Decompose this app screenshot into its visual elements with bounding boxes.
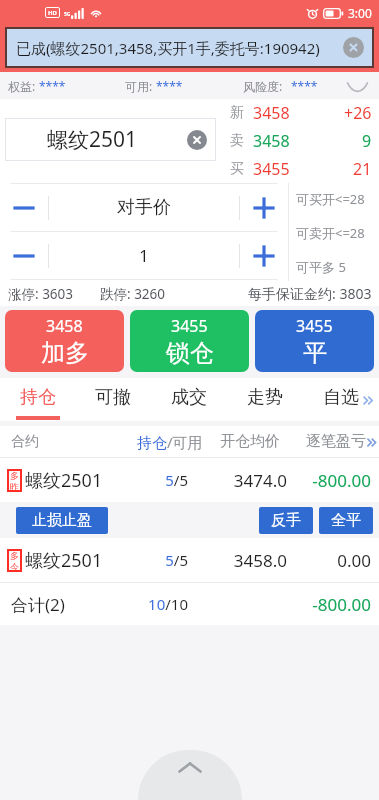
staticText: 开仓均价 — [220, 432, 280, 451]
button[interactable]: More tabs — [359, 391, 377, 409]
button[interactable]: 可撤 — [75, 378, 151, 421]
staticText: 新 — [230, 104, 244, 122]
staticText: 反手 — [271, 511, 301, 530]
staticText: +26 — [344, 102, 372, 124]
staticText: **** — [156, 78, 183, 94]
staticText: 3455 — [171, 315, 208, 337]
staticText: 全平 — [331, 511, 361, 530]
button[interactable]: 成交 — [151, 378, 227, 421]
staticText: 3458 — [253, 130, 290, 152]
button[interactable]: 3458 — [5, 310, 124, 372]
button[interactable]: 已成(螺纹2501,3458,买开1手,委托号:190942) — [5, 27, 374, 68]
button[interactable]: 反手 — [259, 507, 313, 534]
staticText: 3458 — [46, 315, 83, 337]
staticText: 螺纹2501 — [25, 548, 103, 573]
staticText: 5/5 — [0, 470, 188, 490]
staticText: 螺纹2501 — [25, 468, 103, 493]
staticText: 3455 — [296, 315, 333, 337]
button[interactable]: Increase — [240, 232, 288, 279]
staticText: 今 — [10, 561, 19, 572]
staticText: 3458.0 — [0, 549, 287, 572]
staticText: 可撤 — [95, 386, 131, 409]
staticText: 3:00 — [348, 5, 372, 21]
staticText: 可卖开<=28 — [296, 224, 365, 242]
button[interactable]: 3455 — [255, 310, 374, 372]
staticText: 3458 — [253, 102, 290, 124]
staticText: 每手保证金约: 3803 — [248, 284, 372, 303]
staticText: 买 — [230, 160, 244, 178]
staticText: 止损止盈 — [32, 511, 92, 530]
button[interactable]: 止损止盈 — [16, 507, 108, 534]
button[interactable]: 卖 — [228, 127, 379, 155]
button[interactable]: Increase — [240, 184, 288, 231]
staticText: 自选 — [323, 386, 359, 409]
button[interactable]: 新 — [228, 99, 379, 127]
staticText: 9 — [362, 130, 372, 152]
staticText: HD — [48, 9, 57, 17]
staticText: 加多 — [41, 338, 89, 368]
staticText: 持仓/可用 — [137, 432, 203, 452]
staticText: **** — [39, 78, 66, 94]
staticText: -800.00 — [0, 469, 371, 492]
staticText: 5G — [64, 11, 71, 18]
button[interactable]: 走势 — [227, 378, 303, 421]
staticText: 多 — [10, 470, 19, 481]
staticText: 合约 — [11, 433, 39, 451]
staticText: 可买开<=28 — [296, 190, 365, 208]
staticText: 可平多 5 — [296, 258, 346, 276]
staticText: 锁仓 — [166, 338, 214, 368]
button[interactable]: More columns — [366, 436, 378, 448]
button[interactable]: 持仓 — [0, 378, 75, 421]
staticText: 3474.0 — [0, 469, 287, 492]
staticText: 5/5 — [0, 550, 188, 570]
staticText: 螺纹2501 — [47, 125, 138, 154]
staticText: 已成(螺纹2501,3458,买开1手,委托号:190942) — [16, 38, 320, 58]
staticText: 合计(2) — [11, 593, 65, 616]
staticText: 风险度: — [243, 78, 283, 94]
staticText: 卖 — [230, 132, 244, 150]
staticText: 走势 — [247, 386, 283, 409]
staticText: **** — [291, 78, 318, 94]
staticText: 平 — [303, 338, 327, 368]
button[interactable]: Clear contract — [187, 130, 207, 150]
staticText: 涨停: 3603 — [8, 285, 74, 303]
staticText: 昨 — [10, 481, 19, 492]
staticText: 持仓 — [20, 386, 56, 409]
staticText: 逐笔盈亏 — [306, 432, 366, 451]
staticText: 成交 — [171, 386, 207, 409]
staticText: 跌停: 3260 — [100, 285, 166, 303]
button[interactable]: Expand panel — [138, 750, 242, 800]
staticText: 10/10 — [0, 594, 188, 614]
button[interactable]: 3455 — [130, 310, 249, 372]
button[interactable]: 多 — [0, 458, 379, 502]
staticText: 21 — [353, 158, 372, 180]
button[interactable]: 全平 — [319, 507, 373, 534]
staticText: 权益: — [8, 78, 36, 94]
staticText: 3455 — [253, 158, 290, 180]
staticText: 1 — [139, 244, 149, 267]
staticText: 可用: — [125, 78, 153, 94]
button[interactable]: Decrease — [0, 184, 48, 231]
button[interactable]: 自选 — [303, 378, 379, 421]
staticText: -800.00 — [0, 593, 371, 616]
staticText: 多 — [10, 550, 19, 561]
button[interactable]: 螺纹2501 — [5, 118, 216, 161]
staticText: 对手价 — [117, 196, 171, 219]
staticText: 0.00 — [0, 549, 371, 572]
button[interactable]: 买 — [228, 155, 379, 183]
button[interactable]: Decrease — [0, 232, 48, 279]
button[interactable]: Toggle balance visibility — [344, 77, 370, 95]
button[interactable]: 多 — [0, 538, 379, 582]
button[interactable]: Dismiss notification — [343, 37, 364, 58]
